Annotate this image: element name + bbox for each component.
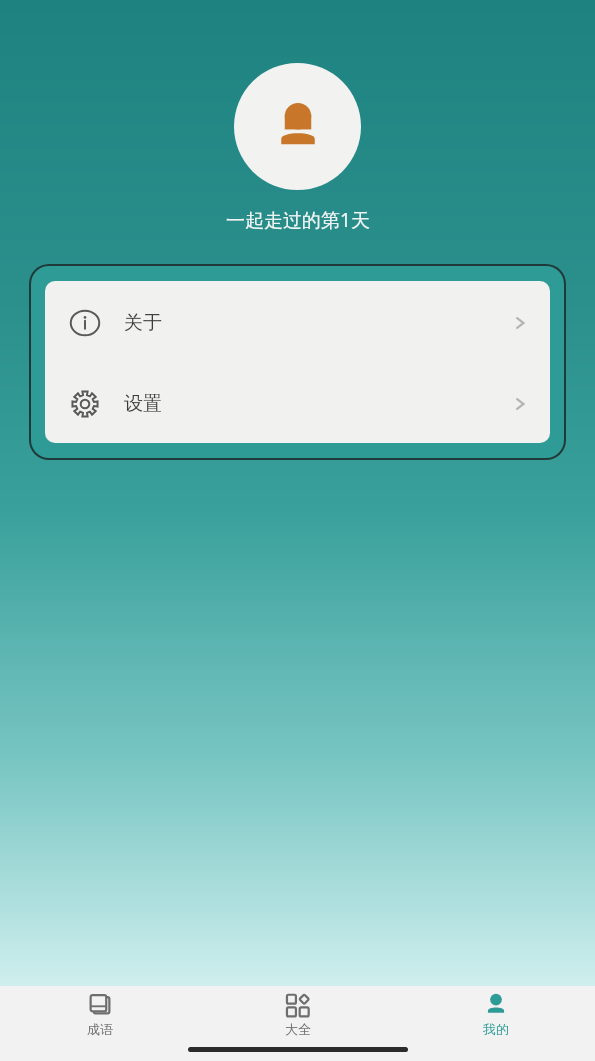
staticText: 一起走过的第1天 [226,207,370,233]
button[interactable]: 关于 [45,281,550,364]
staticText: 我的 [483,1021,509,1037]
staticText: 成语 [87,1021,113,1037]
button[interactable]: 大全 [199,986,397,1043]
button[interactable]: 成语 [0,986,199,1043]
button[interactable]: Avatar [234,63,361,190]
button[interactable]: 设置 [45,364,550,443]
button[interactable]: 我的 [397,986,595,1043]
staticText: 关于 [124,311,162,335]
staticText: 设置 [124,392,162,416]
staticText: 大全 [285,1021,311,1037]
